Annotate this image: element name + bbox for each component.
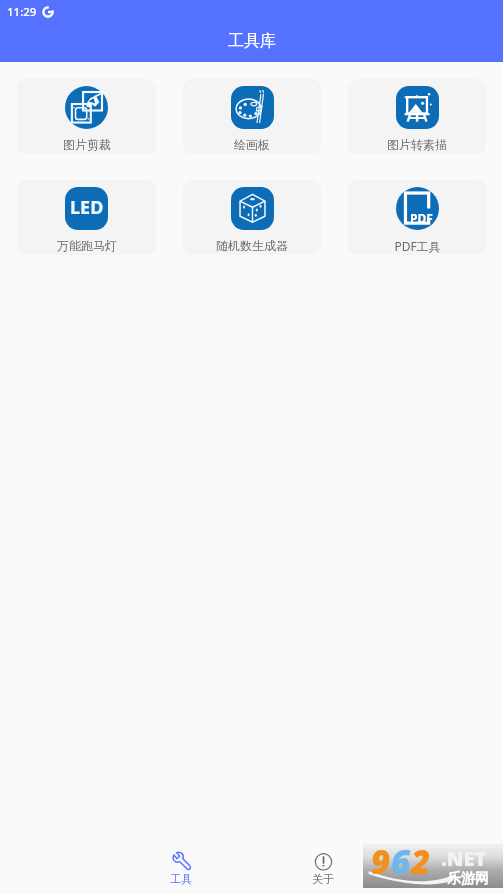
button[interactable]: 关于 [273, 838, 373, 894]
staticText: 图片剪裁 [63, 137, 111, 152]
staticText: 工具 [170, 872, 192, 886]
button[interactable]: PDF [348, 180, 486, 255]
staticText: .NET [441, 845, 487, 872]
button[interactable]: 图片剪裁 [17, 79, 156, 154]
button[interactable]: 工具 [131, 838, 231, 894]
staticText: 绘画板 [234, 137, 270, 152]
other: 工具 [172, 851, 191, 870]
staticText: PDF工具 [394, 238, 441, 254]
staticText: 随机数生成器 [216, 238, 288, 253]
button[interactable]: LED [17, 180, 156, 255]
button[interactable]: 绘画板 [183, 79, 321, 154]
staticText: 9 [371, 839, 391, 883]
staticText: LED [70, 195, 104, 220]
staticText: PDF [410, 210, 433, 226]
staticText: 万能跑马灯 [57, 238, 117, 253]
button[interactable]: 图片转素描 [348, 79, 486, 154]
button[interactable]: 随机数生成器 [183, 180, 321, 255]
staticText: 11:29 [7, 4, 37, 20]
staticText: 6 [391, 839, 411, 883]
staticText: 关于 [312, 872, 334, 886]
staticText: 乐游网 [447, 870, 489, 888]
staticText: 图片转素描 [387, 137, 447, 152]
staticText: 2 [411, 839, 431, 883]
staticText: 工具库 [228, 31, 276, 51]
other: 关于 [314, 851, 333, 870]
